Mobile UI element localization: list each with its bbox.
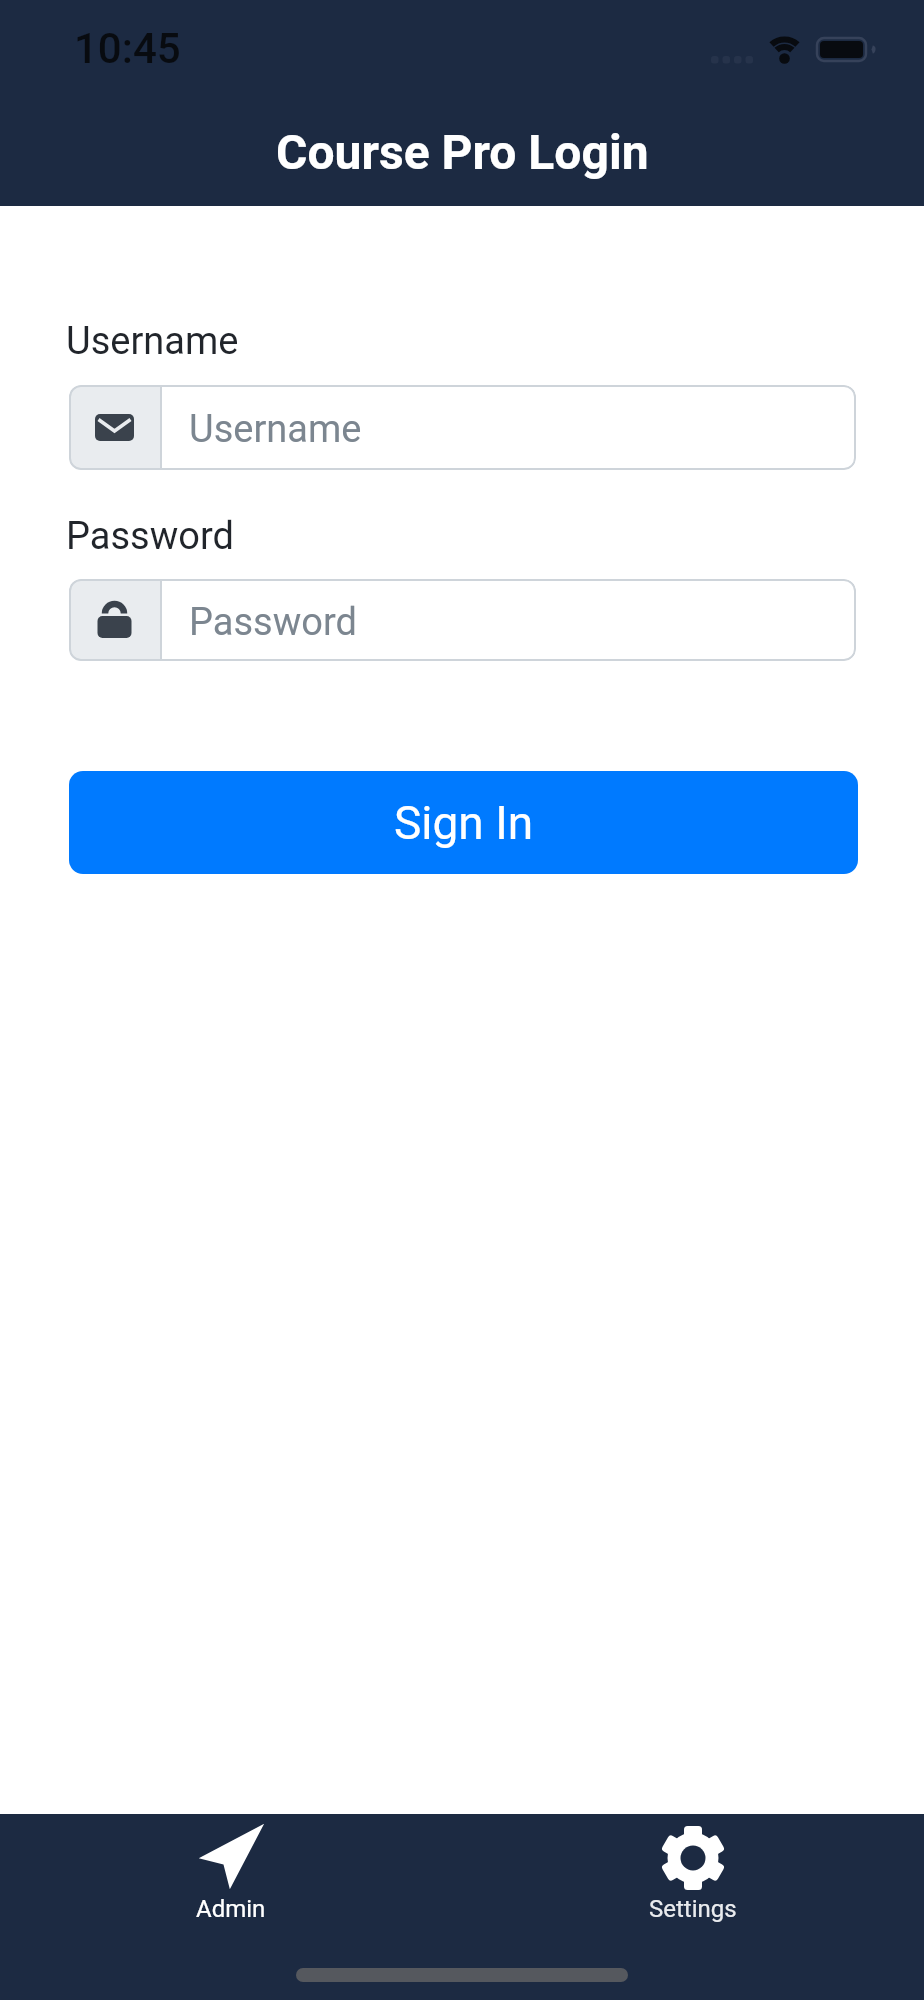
staticText: 10:45 — [74, 24, 181, 72]
button[interactable]: Admin — [0, 1814, 462, 1923]
staticText: Password — [66, 514, 234, 559]
staticText: Username — [189, 407, 362, 452]
button[interactable]: Password — [69, 579, 856, 661]
staticText: Sign In — [394, 796, 534, 850]
button[interactable]: Settings — [462, 1814, 924, 1923]
button[interactable]: Username — [69, 385, 856, 470]
staticText: Course Pro Login — [276, 124, 649, 180]
staticText: Password — [189, 600, 357, 645]
staticText: Settings — [649, 1895, 737, 1923]
staticText: Username — [66, 319, 239, 364]
button[interactable]: Sign In — [69, 771, 858, 874]
staticText: Admin — [196, 1895, 266, 1923]
